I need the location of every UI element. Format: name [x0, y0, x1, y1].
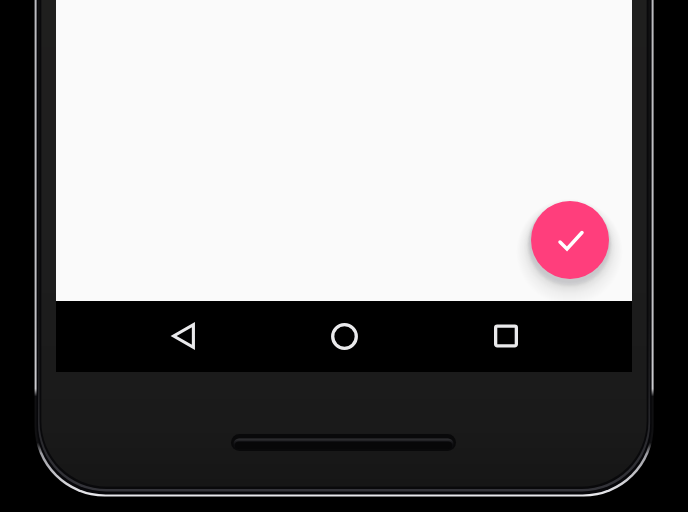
button[interactable]: Back — [150, 302, 218, 370]
button[interactable]: Done — [531, 201, 609, 279]
button[interactable]: Home — [310, 302, 378, 370]
button[interactable]: Recents — [472, 302, 540, 370]
